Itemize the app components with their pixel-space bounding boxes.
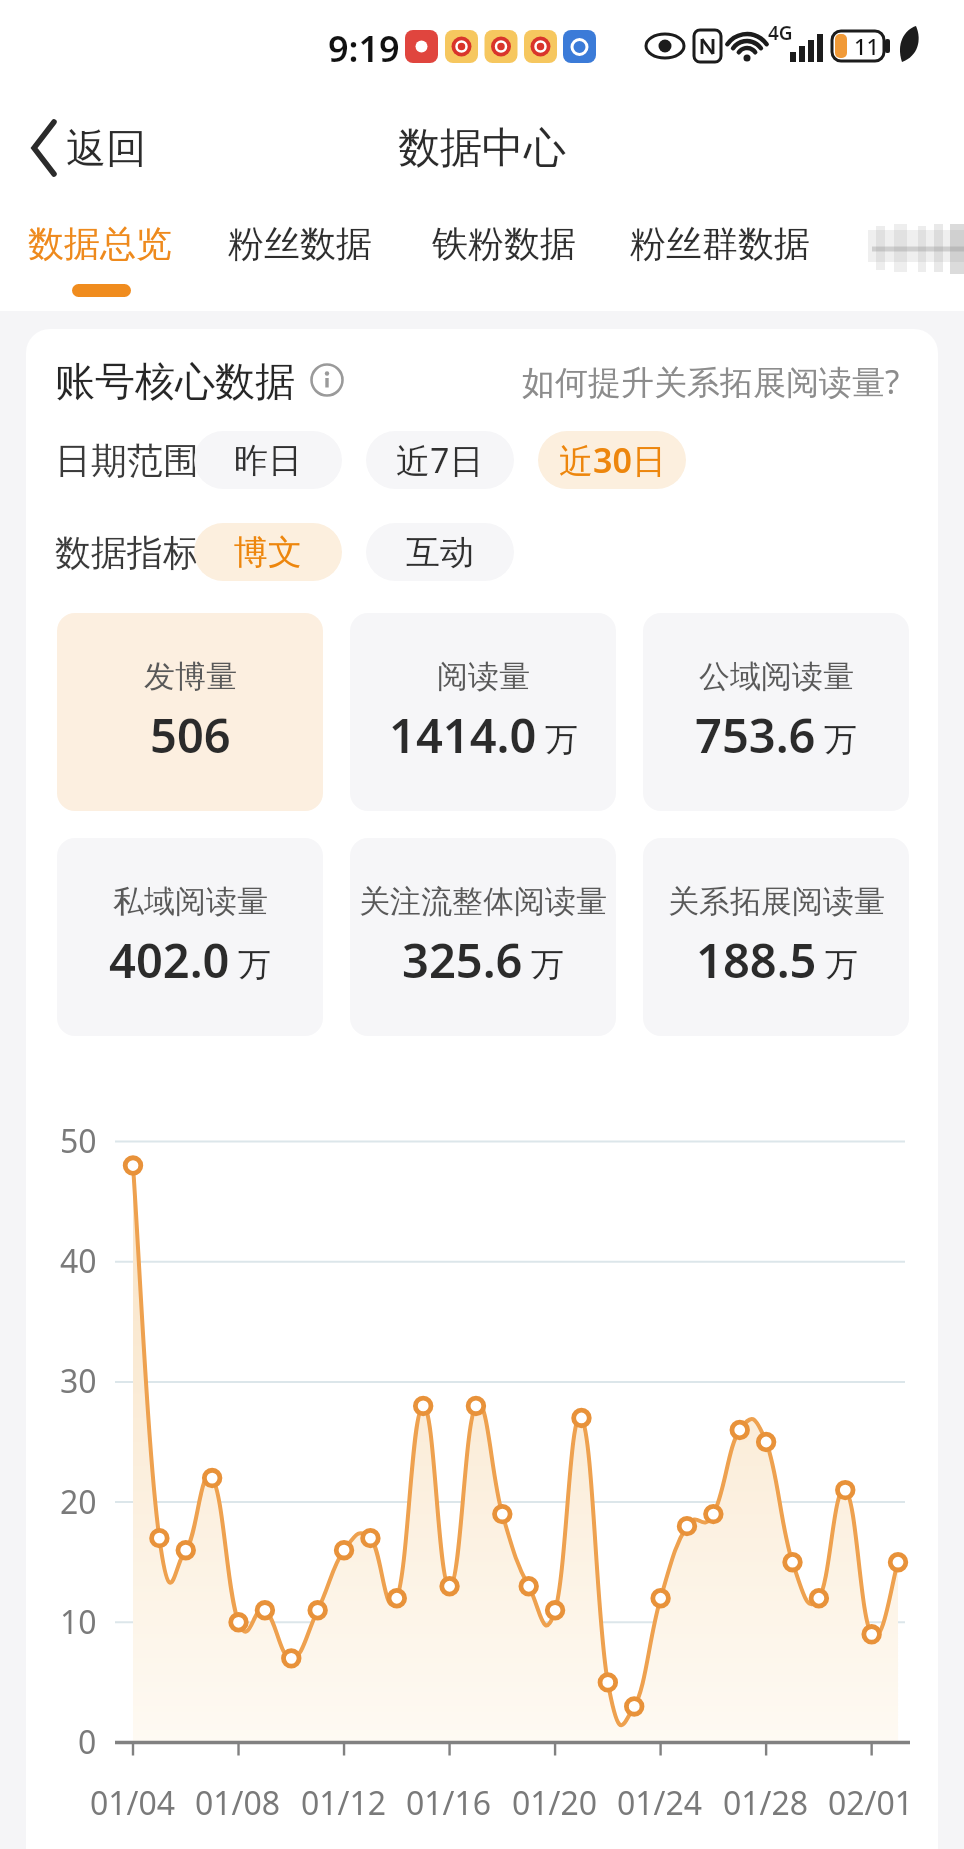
staticText: 402.0 <box>109 928 230 992</box>
staticText: 互动 <box>406 531 474 574</box>
staticText: 01/12 <box>301 1781 387 1825</box>
button[interactable]: 近7日 <box>366 431 514 489</box>
staticText: 01/20 <box>512 1781 598 1825</box>
staticText: 0 <box>78 1720 97 1764</box>
button[interactable]: 关系拓展阅读量 <box>643 838 909 1036</box>
button[interactable]: 发博量 <box>57 613 323 811</box>
staticText: 粉丝群数据 <box>630 221 810 266</box>
staticText: 粉丝数据 <box>228 221 372 266</box>
staticText: 753.6 <box>695 703 816 767</box>
staticText: 50 <box>60 1119 97 1163</box>
staticText: 万 <box>531 944 564 986</box>
staticText: 关系拓展阅读量 <box>668 882 885 921</box>
button[interactable]: 私域阅读量 <box>57 838 323 1036</box>
staticText: 近7日 <box>396 437 484 483</box>
staticText: 公域阅读量 <box>699 657 854 696</box>
staticText: 1414.0 <box>389 703 537 767</box>
staticText: 10 <box>60 1600 97 1644</box>
staticText: 返回 <box>66 123 146 173</box>
button[interactable]: 数据总览 <box>28 215 182 271</box>
staticText: 万 <box>545 719 578 761</box>
staticText: 万 <box>824 719 857 761</box>
button[interactable]: 关注流整体阅读量 <box>350 838 616 1036</box>
button[interactable]: 公域阅读量 <box>643 613 909 811</box>
staticText: 铁粉数据 <box>432 221 576 266</box>
staticText: 01/08 <box>195 1781 281 1825</box>
button[interactable]: 铁粉数据 <box>432 215 586 271</box>
button[interactable]: 阅读量 <box>350 613 616 811</box>
staticText: 188.5 <box>696 928 817 992</box>
staticText: 日期范围 <box>55 438 199 483</box>
button[interactable]: 近30日 <box>538 431 686 489</box>
staticText: 数据总览 <box>28 221 172 266</box>
staticText: 01/16 <box>406 1781 492 1825</box>
button[interactable]: 粉丝数据 <box>228 215 382 271</box>
staticText: 近30日 <box>559 437 666 483</box>
staticText: 11 <box>854 31 880 61</box>
staticText: 02/01 <box>828 1781 914 1825</box>
staticText: 30 <box>60 1359 97 1403</box>
staticText: 如何提升关系拓展阅读量? <box>522 359 900 404</box>
staticText: 万 <box>825 944 858 986</box>
staticText: 私域阅读量 <box>113 882 268 921</box>
button[interactable] <box>24 112 164 182</box>
staticText: 账号核心数据 <box>55 356 295 406</box>
staticText: 40 <box>60 1239 97 1283</box>
button[interactable]: 粉丝群数据 <box>630 215 820 271</box>
staticText: 506 <box>150 703 231 767</box>
staticText: 发博量 <box>144 657 237 696</box>
button[interactable]: 博文 <box>194 523 342 581</box>
staticText: 万 <box>238 944 271 986</box>
staticText: 阅读量 <box>437 657 530 696</box>
staticText: 数据中心 <box>398 122 566 175</box>
staticText: 数据指标 <box>55 530 199 575</box>
button[interactable]: 昨日 <box>194 431 342 489</box>
button[interactable]: 互动 <box>366 523 514 581</box>
staticText: 325.6 <box>402 928 523 992</box>
staticText: 关注流整体阅读量 <box>359 882 607 921</box>
staticText: 01/24 <box>617 1781 703 1825</box>
staticText: 9:19 <box>328 24 400 68</box>
staticText: 昨日 <box>234 439 302 482</box>
staticText: 博文 <box>234 531 302 574</box>
staticText: 01/28 <box>723 1781 809 1825</box>
staticText: 4G <box>768 20 793 42</box>
staticText: 20 <box>60 1480 97 1524</box>
staticText: 01/04 <box>90 1781 176 1825</box>
